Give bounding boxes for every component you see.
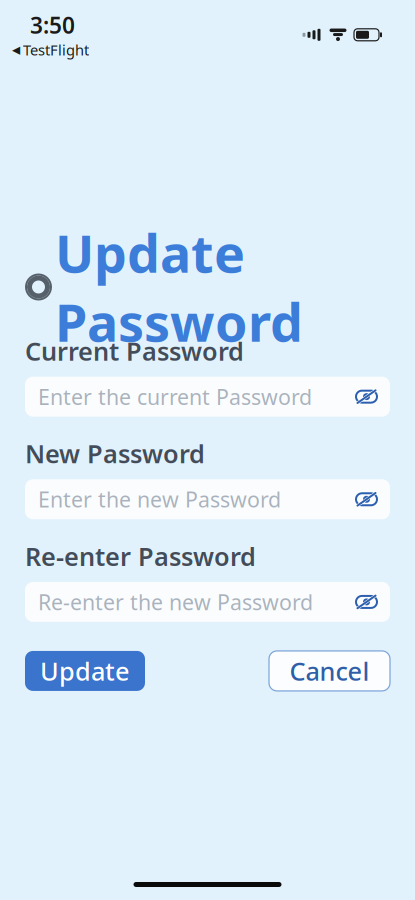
staticText: New Password bbox=[25, 437, 205, 470]
staticText: TestFlight bbox=[23, 40, 89, 60]
button[interactable]: Cancel bbox=[269, 651, 390, 691]
staticText: Enter the new Password bbox=[38, 485, 281, 513]
button[interactable]: Update bbox=[25, 651, 145, 691]
staticText: 3:50 bbox=[30, 10, 75, 40]
staticText: Cancel bbox=[289, 654, 369, 688]
staticText: ◀ bbox=[12, 44, 20, 56]
staticText: Re-enter the new Password bbox=[38, 588, 313, 616]
button[interactable]: Enter the current Password bbox=[25, 377, 390, 417]
staticText: Update Password bbox=[55, 218, 303, 356]
staticText: Current Password bbox=[25, 334, 244, 368]
button[interactable]: Re-enter the new Password bbox=[25, 582, 390, 622]
staticText: Update bbox=[40, 654, 130, 688]
staticText: Enter the current Password bbox=[38, 382, 312, 411]
staticText: Re-enter Password bbox=[25, 539, 256, 573]
button[interactable]: Enter the new Password bbox=[25, 479, 390, 519]
